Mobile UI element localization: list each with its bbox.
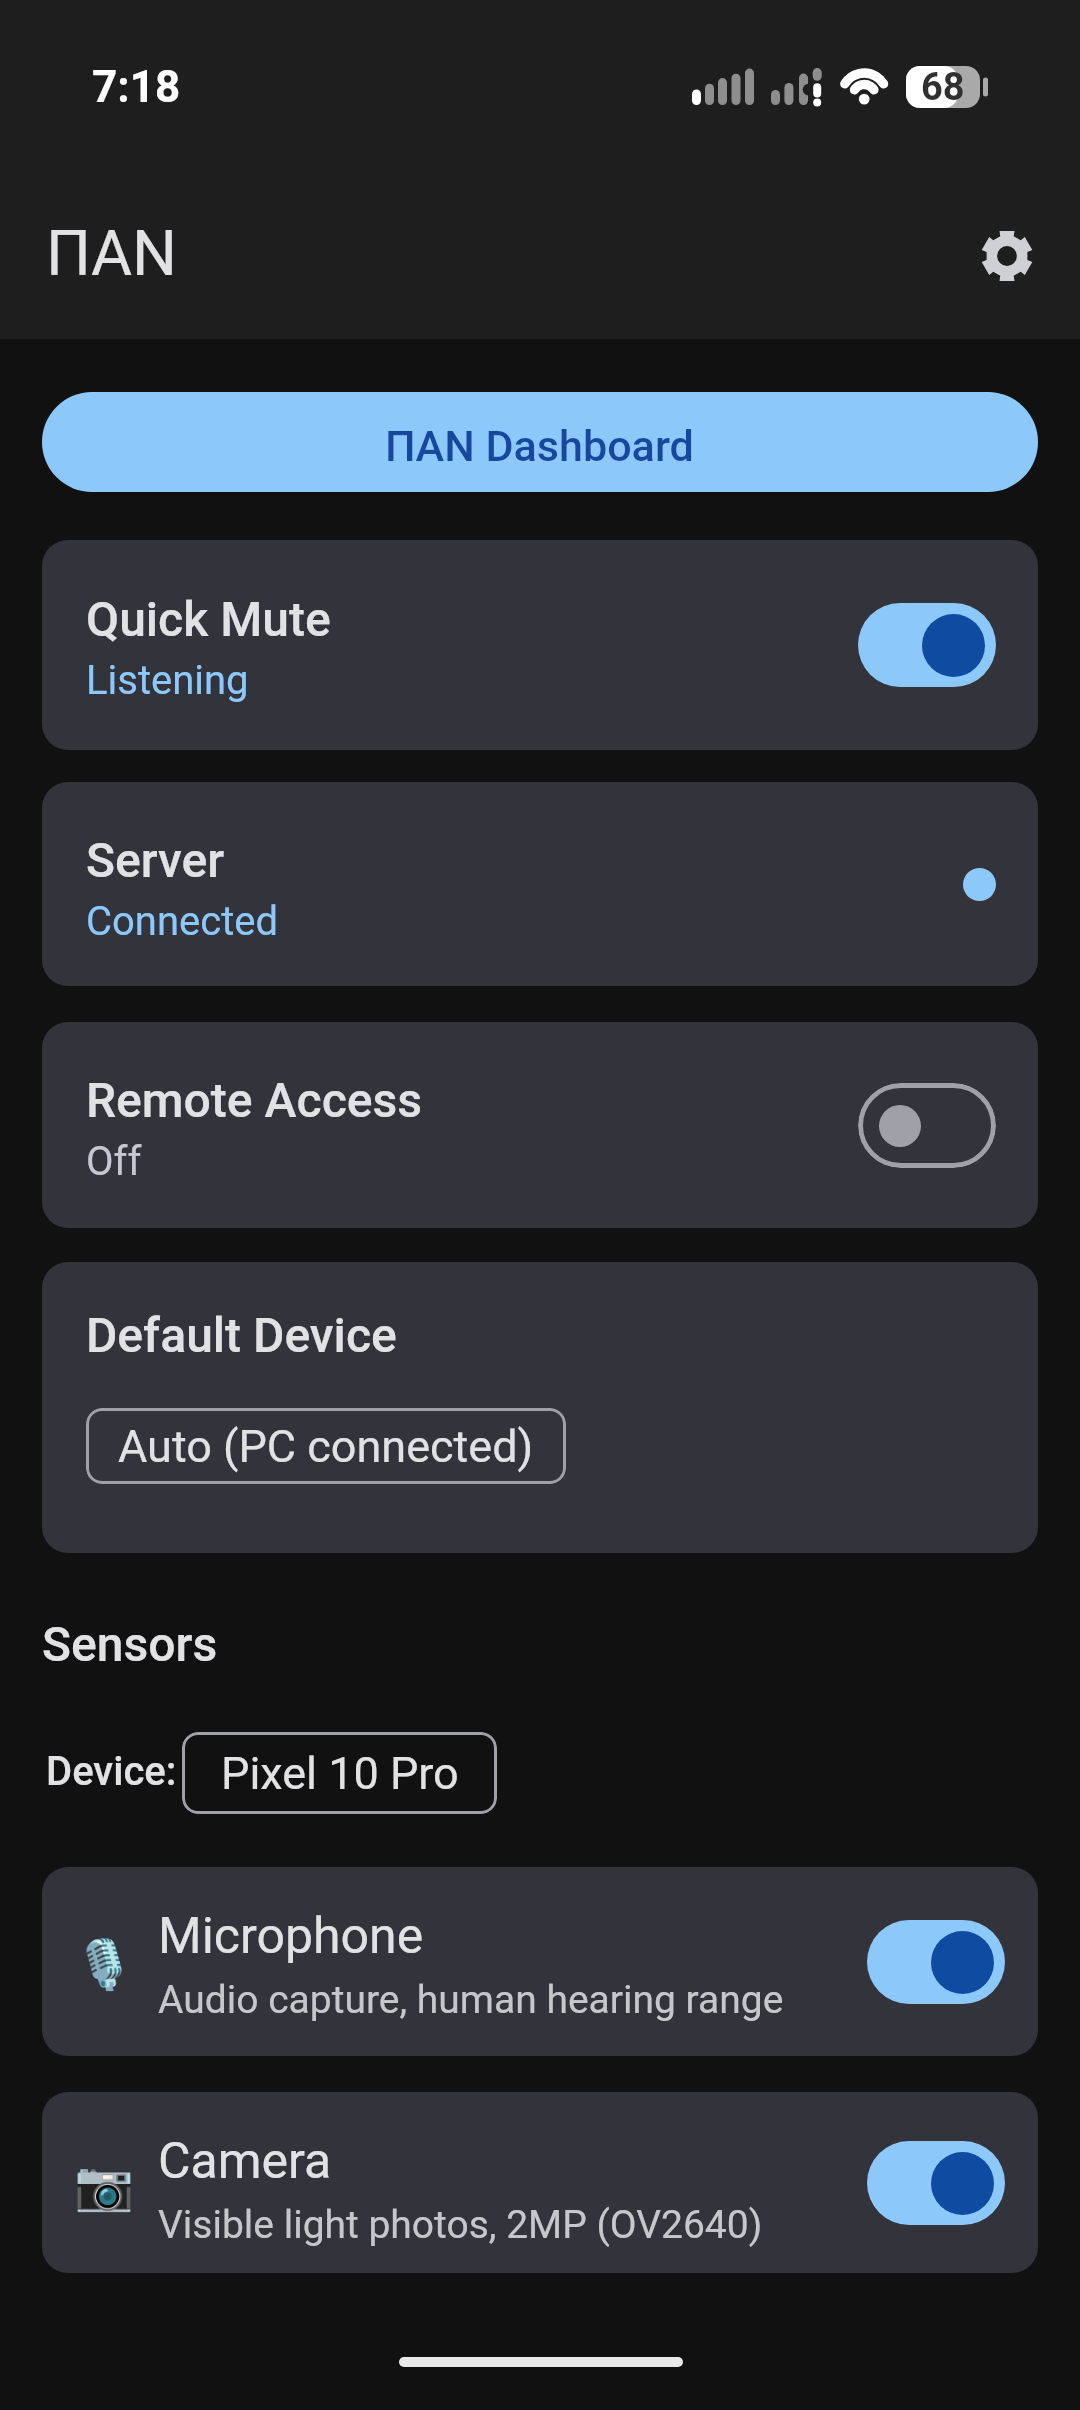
button[interactable]: Auto (PC connected) — [86, 1408, 566, 1484]
staticText: ΠAN — [46, 217, 177, 291]
staticText: Visible light photos, 2MP (OV2640) — [158, 2202, 763, 2248]
staticText: Microphone — [158, 1907, 424, 1966]
staticText: Device: — [46, 1748, 177, 1795]
staticText: Connected — [86, 898, 279, 945]
staticText: 🎙 — [74, 1937, 132, 1993]
staticText: 7:18 — [92, 61, 181, 113]
staticText: Auto (PC connected) — [118, 1420, 534, 1473]
staticText: Audio capture, human hearing range — [158, 1977, 784, 2023]
button[interactable]: Default Device — [42, 1262, 1038, 1553]
button[interactable]: 🎙 — [42, 1867, 1038, 2056]
staticText: 68 — [921, 65, 965, 110]
staticText: Quick Mute — [86, 591, 331, 647]
button[interactable]: Settings — [957, 206, 1057, 306]
button[interactable]: Quick Mute — [42, 540, 1038, 750]
button[interactable]: Toggle, off — [858, 1083, 996, 1168]
staticText: Server — [86, 832, 225, 888]
button[interactable]: 📷 — [42, 2092, 1038, 2273]
staticText: Off — [86, 1138, 142, 1185]
button[interactable]: Toggle, on — [858, 603, 996, 687]
button[interactable]: Toggle, on — [867, 1920, 1005, 2004]
button[interactable]: Remote Access — [42, 1022, 1038, 1228]
button[interactable]: ΠAN Dashboard — [42, 392, 1038, 492]
staticText: Remote Access — [86, 1072, 423, 1128]
staticText: Sensors — [42, 1616, 218, 1672]
button[interactable]: Server — [42, 782, 1038, 986]
button[interactable]: Toggle, on — [867, 2141, 1005, 2225]
staticText: Pixel 10 Pro — [221, 1747, 459, 1800]
staticText: Default Device — [86, 1307, 397, 1363]
button[interactable]: Pixel 10 Pro — [182, 1732, 497, 1814]
staticText: Camera — [158, 2132, 332, 2191]
staticText: ΠAN Dashboard — [385, 421, 694, 471]
staticText: 📷 — [74, 2158, 132, 2214]
staticText: Listening — [86, 657, 249, 704]
